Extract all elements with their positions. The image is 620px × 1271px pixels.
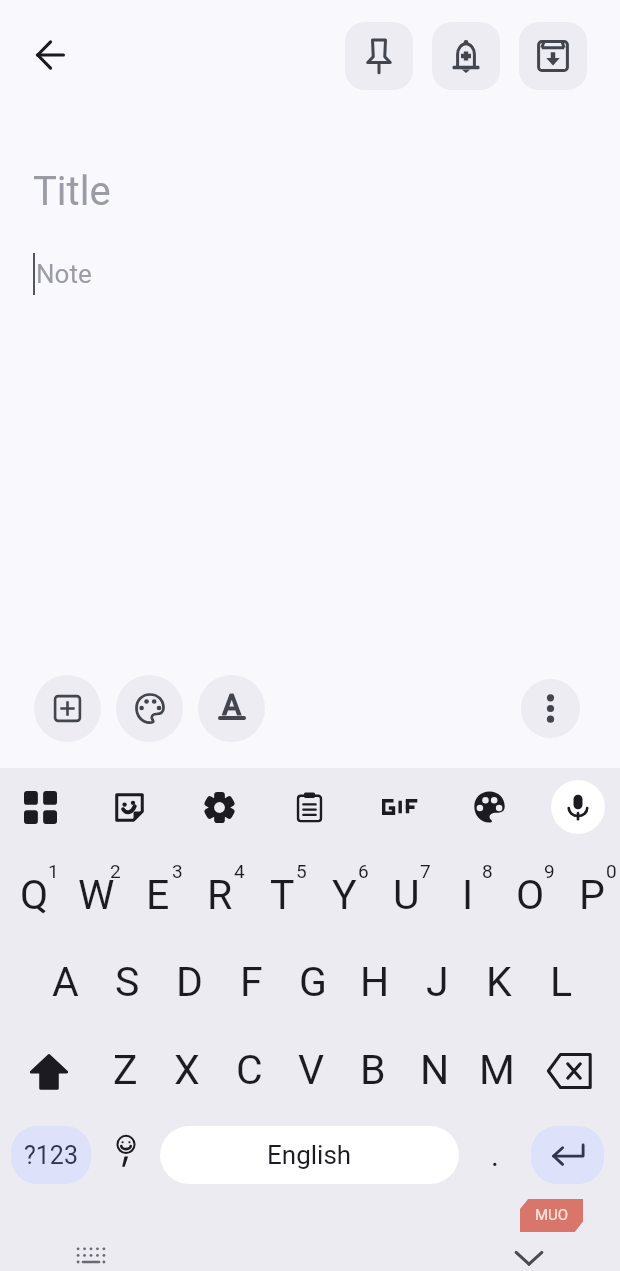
staticText: E — [146, 871, 170, 919]
button[interactable]: ?123 — [11, 1126, 91, 1184]
button[interactable]: Back — [20, 25, 80, 85]
staticText: B — [360, 1046, 386, 1094]
staticText: I — [462, 871, 474, 919]
staticText: V — [298, 1046, 325, 1094]
button[interactable]: GIF — [373, 780, 427, 834]
staticText: A — [52, 958, 79, 1006]
staticText: 3 — [172, 860, 183, 882]
button[interactable]: Stickers — [102, 780, 156, 834]
staticText: S — [115, 958, 140, 1006]
button[interactable]: Archive — [519, 22, 587, 90]
staticText: 2 — [110, 860, 121, 882]
staticText: 6 — [358, 860, 369, 882]
staticText: J — [426, 958, 449, 1006]
button[interactable]: M — [466, 1022, 528, 1110]
staticText: C — [236, 1046, 263, 1094]
button[interactable]: Themes — [462, 780, 516, 834]
staticText: X — [174, 1046, 200, 1094]
button[interactable]: T — [248, 846, 310, 934]
button[interactable]: C — [218, 1022, 280, 1110]
staticText: N — [420, 1046, 450, 1094]
button[interactable]: X — [156, 1022, 218, 1110]
staticText: 8 — [482, 860, 493, 882]
staticText: Y — [332, 871, 357, 919]
button[interactable]: Q — [0, 846, 62, 934]
staticText: L — [550, 958, 573, 1006]
button[interactable]: D — [158, 934, 220, 1022]
button[interactable]: Emoji — [98, 1126, 154, 1184]
button[interactable]: Z — [94, 1022, 156, 1110]
button[interactable]: Enter — [531, 1126, 604, 1184]
staticText: R — [207, 871, 233, 919]
button[interactable]: A — [34, 934, 96, 1022]
button[interactable]: V — [280, 1022, 342, 1110]
staticText: D — [176, 958, 203, 1006]
button[interactable]: Background colour — [116, 675, 183, 742]
button[interactable]: R — [186, 846, 248, 934]
button[interactable]: K — [468, 934, 530, 1022]
staticText: ?123 — [24, 1141, 78, 1170]
button[interactable]: Y — [310, 846, 372, 934]
button[interactable]: S — [96, 934, 158, 1022]
button[interactable]: Settings — [192, 780, 246, 834]
button[interactable]: I — [434, 846, 496, 934]
button[interactable]: W — [62, 846, 124, 934]
button[interactable]: F — [220, 934, 282, 1022]
staticText: Z — [113, 1046, 138, 1094]
staticText: 0 — [606, 860, 617, 882]
staticText: 4 — [234, 860, 245, 882]
button[interactable]: Pin — [345, 22, 413, 90]
staticText: H — [360, 958, 390, 1006]
button[interactable]: G — [282, 934, 344, 1022]
staticText: 9 — [544, 860, 555, 882]
staticText: M — [479, 1046, 515, 1094]
staticText: O — [516, 871, 545, 919]
button[interactable]: . — [465, 1126, 525, 1184]
button[interactable]: More options — [521, 679, 580, 738]
staticText: Note — [36, 259, 92, 289]
button[interactable]: Formatting — [198, 675, 265, 742]
button[interactable]: Close keyboard — [509, 1238, 549, 1271]
staticText: P — [579, 871, 605, 919]
staticText: A — [222, 688, 242, 721]
staticText: . — [491, 1138, 499, 1173]
button[interactable]: O — [496, 846, 558, 934]
staticText: 5 — [296, 860, 307, 882]
button[interactable]: Clipboard — [282, 780, 336, 834]
button[interactable]: Reminder — [432, 22, 500, 90]
button[interactable]: P — [558, 846, 620, 934]
button[interactable]: N — [404, 1022, 466, 1110]
staticText: English — [267, 1140, 352, 1170]
staticText: U — [393, 871, 420, 919]
staticText: G — [299, 958, 327, 1006]
staticText: Title — [33, 168, 111, 215]
staticText: K — [486, 958, 512, 1006]
button[interactable]: Voice input — [551, 780, 605, 834]
button[interactable]: J — [406, 934, 468, 1022]
button[interactable]: U — [372, 846, 434, 934]
staticText: W — [78, 871, 115, 919]
button[interactable]: Apps — [13, 780, 67, 834]
button[interactable]: English — [160, 1126, 459, 1184]
staticText: 1 — [48, 860, 59, 882]
button[interactable]: B — [342, 1022, 404, 1110]
staticText: 7 — [420, 860, 431, 882]
staticText: T — [270, 871, 295, 919]
button[interactable]: E — [124, 846, 186, 934]
button[interactable]: L — [530, 934, 592, 1022]
button[interactable]: Hide keyboard — [71, 1239, 111, 1271]
button[interactable]: Add attachment — [34, 675, 101, 742]
staticText: F — [240, 958, 263, 1006]
button[interactable]: Backspace — [528, 1022, 610, 1110]
staticText: MUO — [535, 1206, 569, 1224]
button[interactable]: Shift — [8, 1022, 90, 1110]
staticText: Q — [20, 871, 49, 919]
button[interactable]: H — [344, 934, 406, 1022]
